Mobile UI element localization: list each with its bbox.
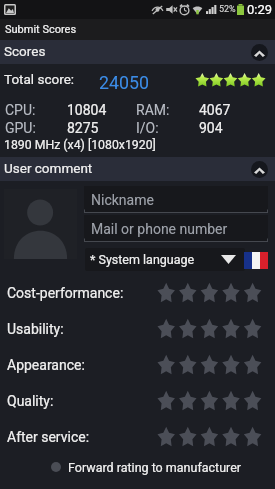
button[interactable]: * System language: [85, 248, 245, 271]
staticText: 10804: [67, 102, 107, 118]
staticText: * System language: [90, 252, 195, 267]
staticText: Quality:: [7, 393, 54, 409]
staticText: Forward rating to manufacturer: [68, 460, 242, 475]
staticText: Total score:: [4, 71, 75, 87]
button[interactable]: Mail or phone number: [84, 215, 268, 242]
other: Collapse User comment: [251, 161, 268, 178]
staticText: Nickname: [91, 192, 154, 208]
staticText: RAM:: [136, 102, 170, 118]
button[interactable]: Cost-performance:: [0, 275, 275, 311]
button[interactable]: Nickname: [84, 186, 268, 213]
button[interactable]: Avatar: [4, 189, 77, 259]
staticText: CPU:: [5, 102, 36, 118]
staticText: User comment: [4, 160, 93, 176]
button[interactable]: Quality:: [0, 383, 275, 419]
button[interactable]: User comment: [0, 157, 275, 181]
staticText: Cost-performance:: [7, 285, 124, 301]
staticText: GPU:: [5, 120, 36, 136]
staticText: 24050: [99, 72, 150, 93]
staticText: After service:: [7, 429, 90, 445]
staticText: 904: [199, 120, 223, 136]
staticText: I/O:: [136, 120, 159, 136]
staticText: Scores: [4, 43, 46, 59]
staticText: 4067: [199, 102, 231, 118]
staticText: Submit Scores: [5, 23, 77, 36]
button[interactable]: Scores: [0, 40, 275, 64]
staticText: Appearance:: [7, 357, 85, 373]
staticText: Mail or phone number: [91, 221, 228, 237]
staticText: 8275: [67, 120, 99, 136]
staticText: 1890 MHz (x4) [1080x1920]: [4, 138, 156, 152]
button[interactable]: Forward rating to manufacturer: [0, 455, 275, 479]
staticText: 52%: [219, 4, 236, 15]
other: Collapse Scores: [251, 44, 268, 61]
button[interactable]: Usability:: [0, 311, 275, 347]
staticText: Usability:: [7, 321, 64, 337]
button[interactable]: After service:: [0, 419, 275, 455]
staticText: 0:29: [247, 2, 273, 17]
button[interactable]: Appearance:: [0, 347, 275, 383]
